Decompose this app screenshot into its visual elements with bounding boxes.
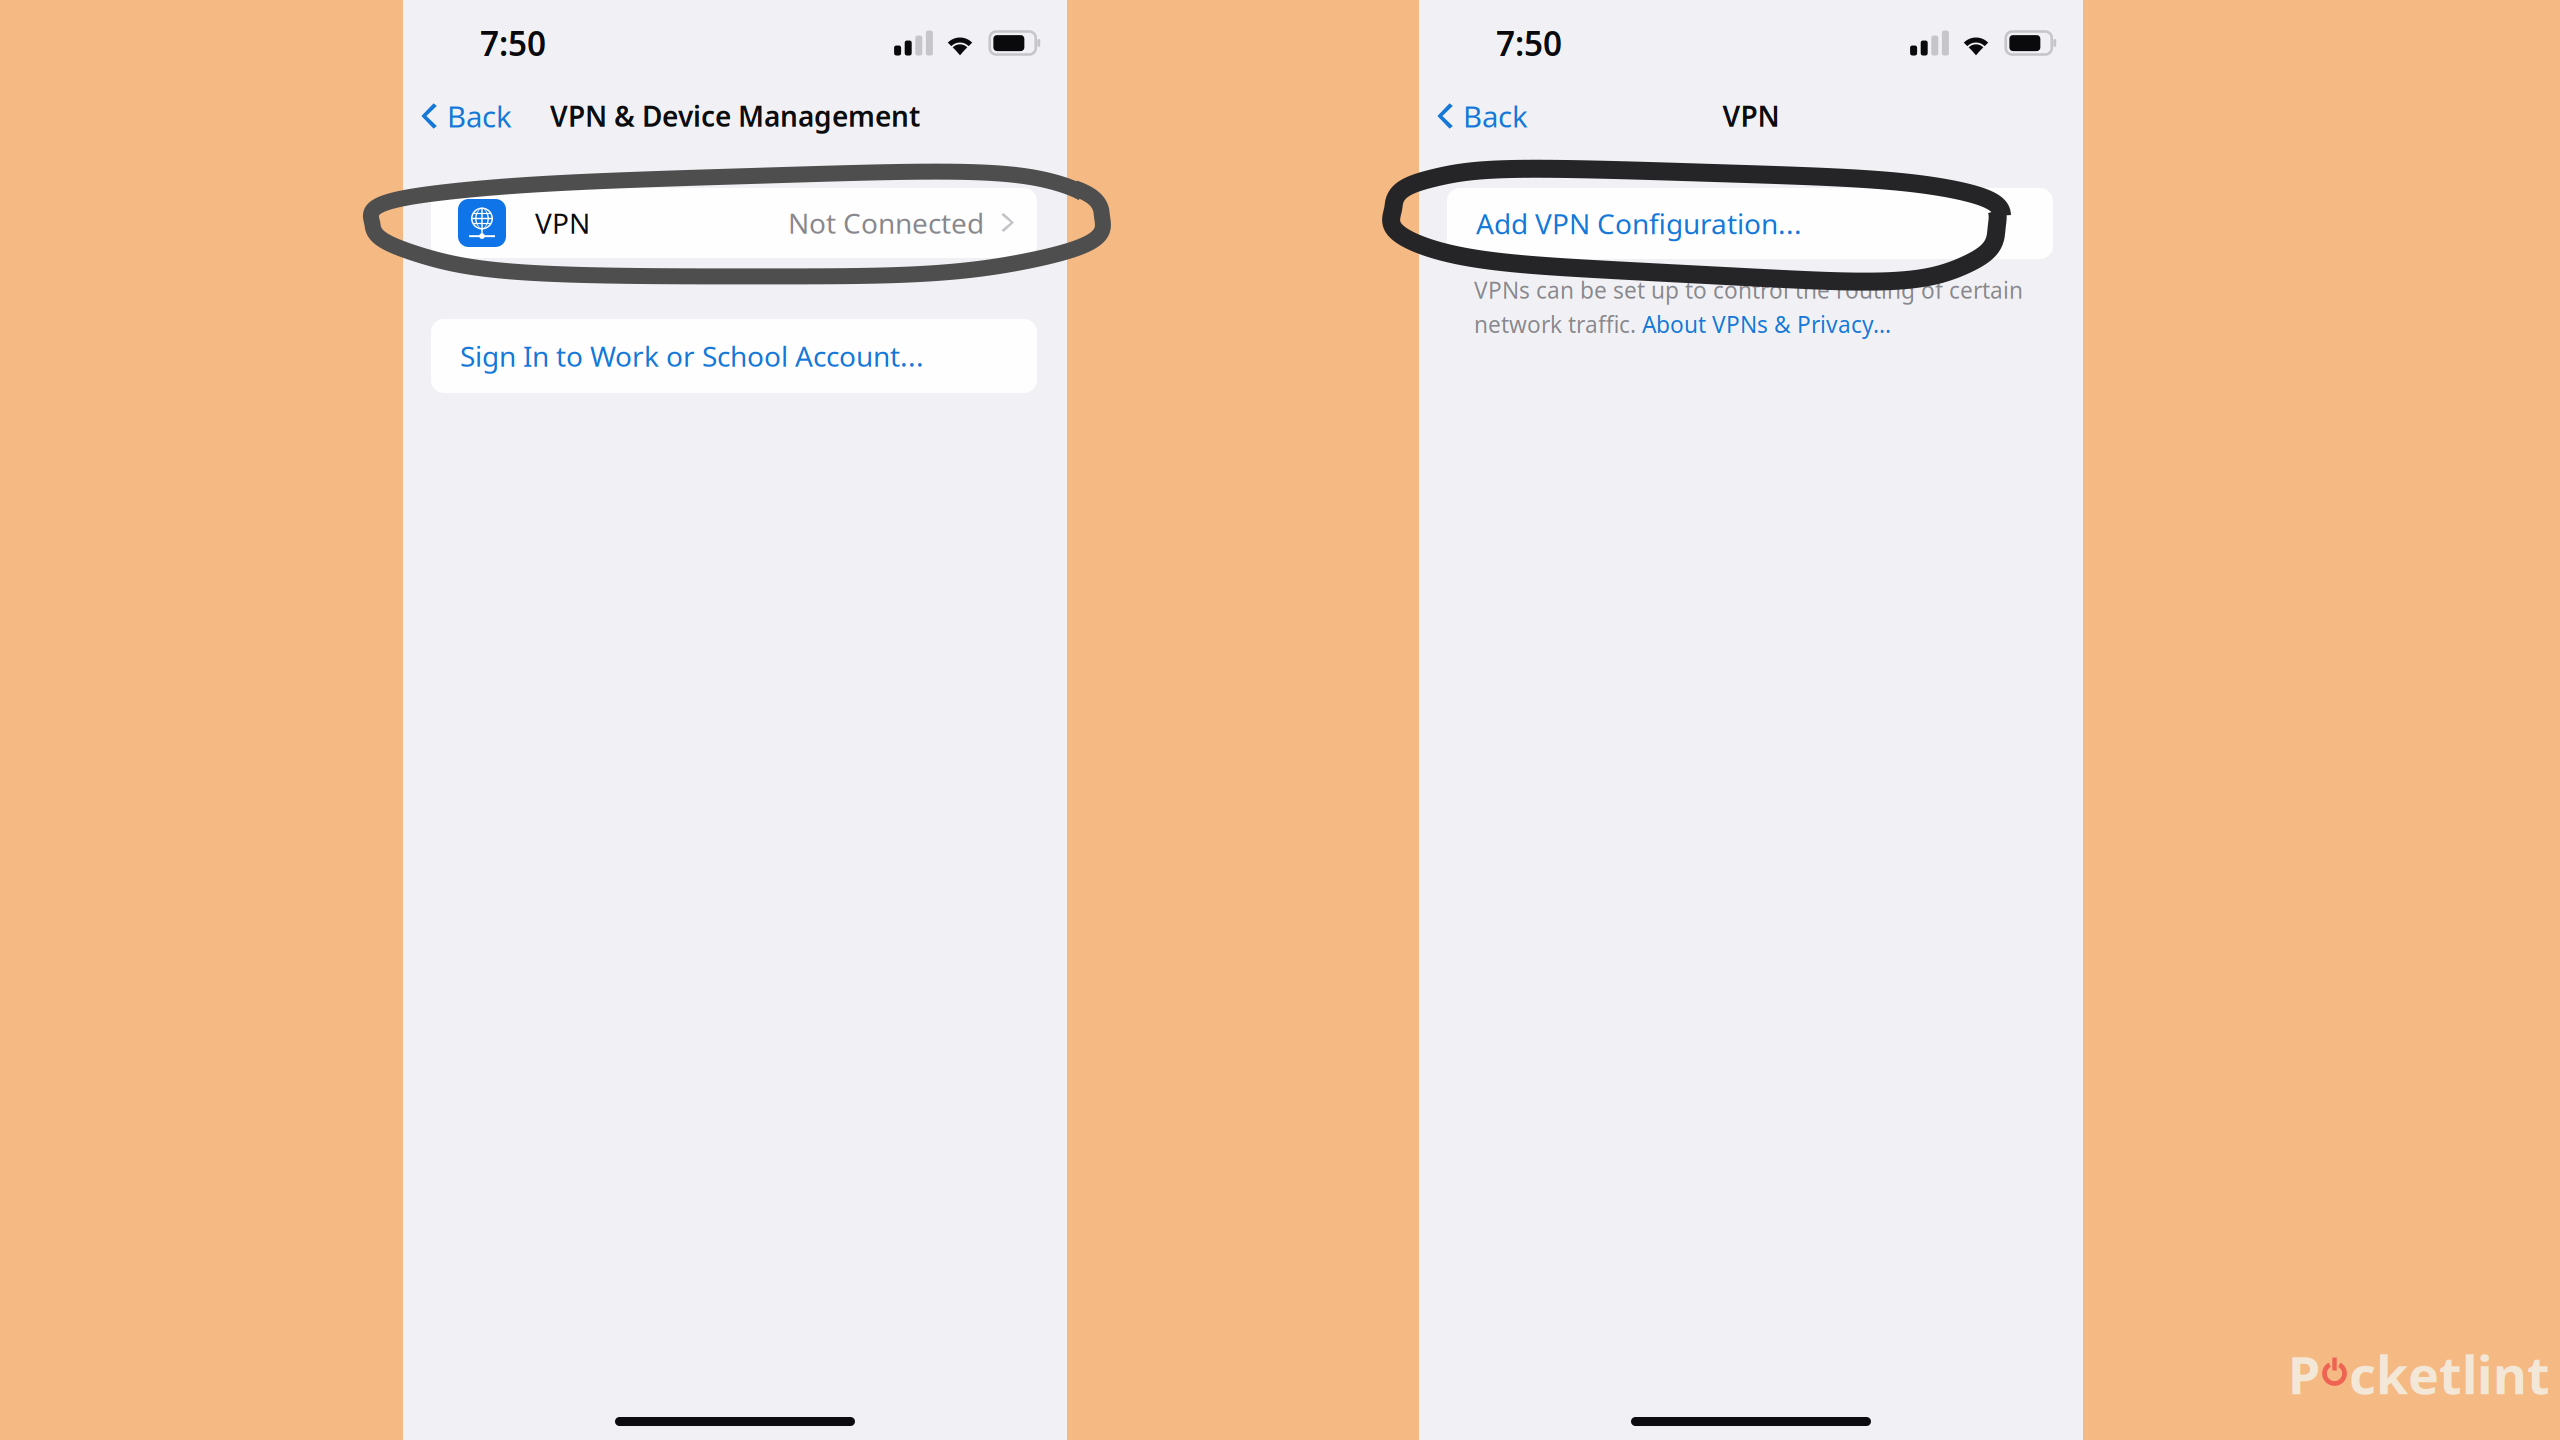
- staticText: Not Connected: [788, 204, 984, 242]
- staticText: network traffic.: [1474, 309, 1642, 339]
- staticText: Back: [447, 96, 512, 135]
- button[interactable]: About VPNs & Privacy...: [1642, 309, 1891, 339]
- staticText: Sign In to Work or School Account...: [460, 337, 924, 375]
- button[interactable]: Back: [403, 94, 543, 138]
- staticText: P: [2288, 1339, 2320, 1409]
- staticText: VPN: [535, 204, 590, 242]
- button[interactable]: VPN: [431, 188, 1037, 258]
- staticText: 7:50: [480, 21, 546, 65]
- staticText: cketlint: [2349, 1339, 2550, 1409]
- staticText: 7:50: [1496, 21, 1562, 65]
- staticText: VPN & Device Management: [550, 97, 920, 135]
- staticText: VPN: [1722, 97, 1779, 135]
- staticText: Add VPN Configuration...: [1476, 205, 1802, 242]
- staticText: Back: [1463, 96, 1528, 135]
- button[interactable]: Add VPN Configuration...: [1447, 188, 2053, 259]
- button[interactable]: Sign In to Work or School Account...: [431, 319, 1037, 393]
- button[interactable]: Back: [1419, 94, 1559, 138]
- staticText: About VPNs & Privacy...: [1642, 309, 1891, 339]
- staticText: VPNs can be set up to control the routin…: [1474, 275, 2023, 305]
